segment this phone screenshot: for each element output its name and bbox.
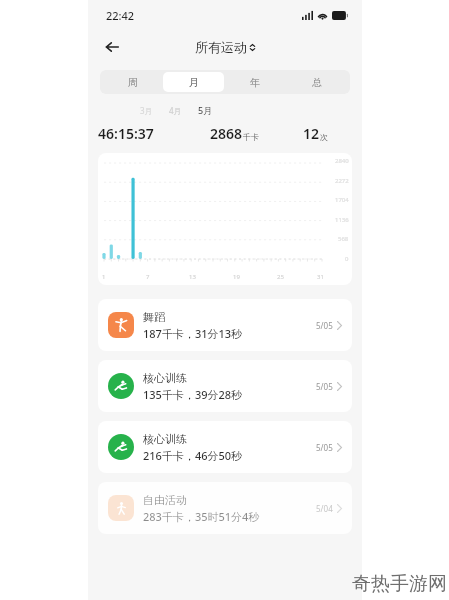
- button[interactable]: 年: [224, 72, 286, 92]
- staticText: 46:15:37: [98, 124, 154, 143]
- staticText: 年: [250, 76, 260, 89]
- staticText: 所有运动: [195, 39, 247, 55]
- staticText: 568: [338, 235, 349, 243]
- staticText: 5/05: [316, 320, 333, 331]
- staticText: 19: [233, 273, 240, 281]
- staticText: 187千卡，31分13秒: [143, 326, 243, 341]
- staticText: 奇热手游网: [352, 572, 447, 596]
- staticText: 7: [146, 273, 150, 281]
- staticText: 0: [345, 255, 349, 263]
- staticText: 22:42: [106, 8, 135, 23]
- staticText: 135千卡，39分28秒: [143, 387, 243, 402]
- staticText: 核心训练: [143, 371, 187, 385]
- button[interactable]: 总: [286, 72, 348, 92]
- button[interactable]: 月: [163, 72, 224, 92]
- staticText: 核心训练: [143, 432, 187, 446]
- staticText: 3月: [140, 105, 153, 116]
- staticText: 1136: [335, 216, 349, 224]
- staticText: 1704: [335, 196, 349, 204]
- staticText: 216千卡，46分50秒: [143, 448, 243, 463]
- staticText: 月: [189, 76, 199, 89]
- button[interactable]: 所有运动: [195, 39, 256, 55]
- staticText: 1: [102, 273, 106, 281]
- button[interactable]: 核心训练: [98, 421, 352, 473]
- staticText: 283千卡，35时51分4秒: [143, 509, 260, 524]
- staticText: 25: [277, 273, 284, 281]
- staticText: 舞蹈: [143, 310, 165, 324]
- staticText: 31: [317, 273, 324, 281]
- staticText: 千卡: [243, 132, 259, 142]
- button[interactable]: 自由活动: [98, 482, 352, 534]
- button[interactable]: 周: [102, 72, 163, 92]
- staticText: 5月: [198, 104, 213, 116]
- staticText: 2868: [210, 124, 243, 143]
- staticText: 总: [312, 76, 322, 89]
- staticText: 4月: [169, 105, 182, 116]
- button[interactable]: Back: [98, 33, 126, 61]
- staticText: 12: [303, 124, 320, 143]
- staticText: 2840: [335, 157, 349, 165]
- staticText: 5/05: [316, 381, 333, 392]
- staticText: 次: [320, 132, 328, 142]
- staticText: 自由活动: [143, 493, 187, 507]
- button[interactable]: 核心训练: [98, 360, 352, 412]
- staticText: 周: [128, 76, 138, 89]
- button[interactable]: 舞蹈: [98, 299, 352, 351]
- staticText: 5/05: [316, 442, 333, 453]
- staticText: 13: [189, 273, 196, 281]
- staticText: 2272: [335, 177, 349, 185]
- staticText: 5/04: [316, 503, 333, 514]
